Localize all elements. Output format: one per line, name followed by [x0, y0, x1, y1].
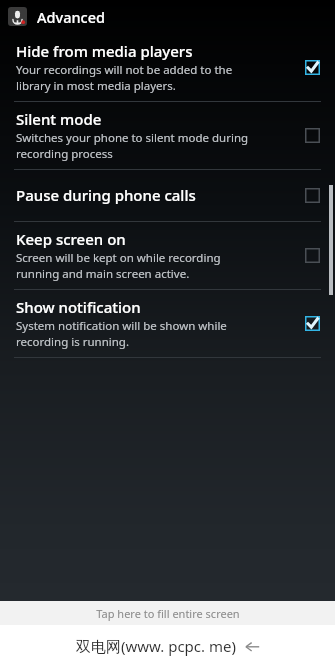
staticText: 双电网(www. pcpc. me) — [76, 636, 236, 656]
button[interactable]: Silent mode — [0, 102, 335, 169]
staticText: Keep screen on — [16, 229, 126, 249]
staticText: Switches your phone to silent mode durin… — [16, 130, 249, 161]
button[interactable]: Keep screen on — [0, 222, 335, 289]
staticText: Show notification — [16, 297, 141, 317]
staticText: Advanced — [37, 7, 105, 27]
staticText: Hide from media players — [16, 41, 193, 61]
button[interactable]: Tap here to fill entire screen — [0, 601, 335, 625]
button[interactable]: Advanced — [0, 0, 335, 33]
button[interactable]: Hide from media players — [0, 39, 335, 101]
staticText: System notification will be shown while … — [16, 318, 227, 349]
staticText: Pause during phone calls — [16, 185, 196, 205]
staticText: Tap here to fill entire screen — [96, 606, 240, 621]
button[interactable]: Pause during phone calls — [0, 170, 335, 221]
staticText: Your recordings will not be added to the… — [16, 62, 233, 93]
staticText: Screen will be kept on while recording r… — [16, 250, 221, 281]
button[interactable]: Show notification — [0, 290, 335, 357]
staticText: Silent mode — [16, 109, 102, 129]
